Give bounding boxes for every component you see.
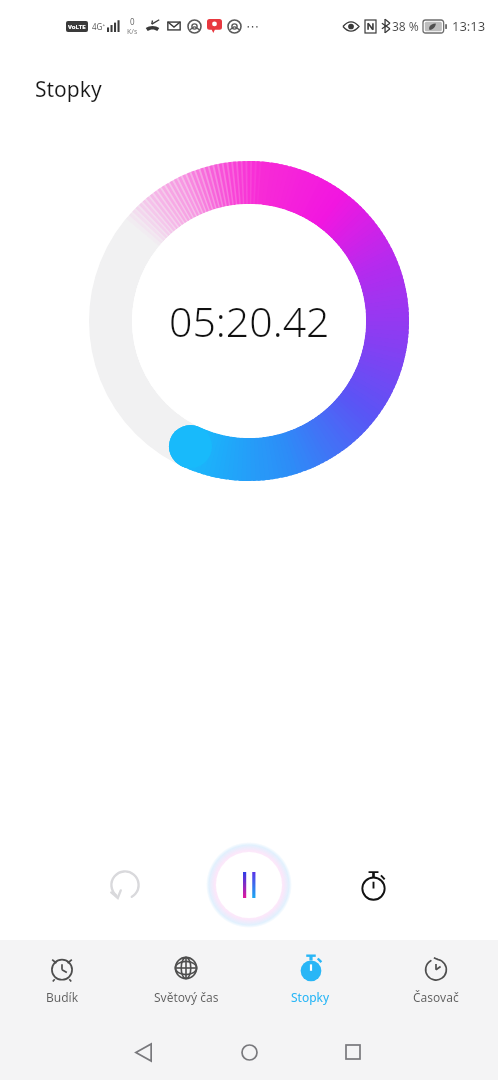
staticText: Stopky [291,989,330,1005]
staticText: Časovač [413,989,459,1005]
button[interactable]: Časovač [373,940,498,1024]
button[interactable]: Home [234,1024,264,1080]
staticText: 13:13 [452,17,486,35]
staticText: Světový čas [154,989,219,1005]
button[interactable]: Recents [338,1024,368,1080]
staticText: 38 % [392,18,419,34]
button[interactable]: Pause [216,852,282,918]
button[interactable]: Back [128,1024,158,1080]
staticText: Stopky [35,75,102,104]
button[interactable]: Stopky [248,940,373,1024]
button[interactable]: Světový čas [124,940,248,1024]
button[interactable]: Reset [98,858,152,912]
staticText: 05:20.42 [169,293,330,349]
staticText: Budík [46,989,79,1005]
staticText: 4G⁺ [92,21,106,32]
button[interactable]: Lap [346,858,400,912]
staticText: K/s [127,27,138,37]
staticText: 0 [130,16,135,27]
staticText: ⋯ [246,19,259,34]
staticText: VoLTE [68,23,86,31]
button[interactable]: Budík [0,940,124,1024]
